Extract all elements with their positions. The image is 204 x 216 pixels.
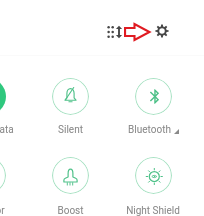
button[interactable]: Edit tiles xyxy=(104,21,126,43)
staticText: Vibrator xyxy=(0,205,5,216)
button[interactable]: Mobile data xyxy=(0,78,37,115)
staticText: Boost xyxy=(57,205,84,216)
staticText: Bluetooth xyxy=(128,124,171,136)
button[interactable]: Night Shield xyxy=(103,157,203,194)
button[interactable]: Boost xyxy=(20,157,120,194)
button[interactable]: Settings xyxy=(153,22,171,40)
staticText: Mobile data xyxy=(0,124,14,136)
button[interactable]: Silent xyxy=(20,78,120,115)
button[interactable]: Vibrator xyxy=(0,157,37,194)
staticText: Silent xyxy=(58,124,83,136)
staticText: Night Shield xyxy=(126,205,180,216)
button[interactable]: Bluetooth xyxy=(103,78,203,115)
